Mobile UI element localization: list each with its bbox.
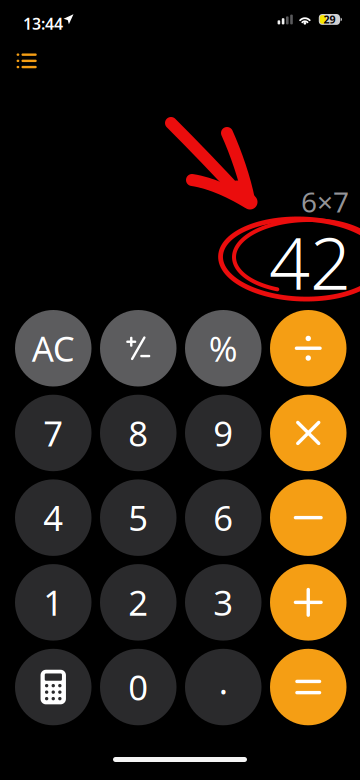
staticText: 8 [128, 410, 148, 456]
staticText: 2 [128, 579, 148, 625]
button[interactable]: 0 [100, 649, 176, 725]
staticText: % [209, 325, 238, 371]
staticText: AC [32, 325, 75, 371]
button[interactable]: 6 [185, 479, 261, 556]
button[interactable]: 8 [100, 395, 176, 471]
staticText: 1 [43, 579, 63, 625]
button[interactable]: Divide [270, 310, 346, 386]
button[interactable]: Equals [270, 649, 346, 725]
button[interactable]: . [185, 649, 261, 725]
button[interactable]: 1 [15, 564, 91, 641]
staticText: 13:44 [23, 13, 63, 34]
button[interactable]: 5 [100, 479, 176, 556]
button[interactable]: 4 [15, 479, 91, 556]
staticText: 29 [323, 12, 335, 27]
button[interactable]: 9 [185, 395, 261, 471]
button[interactable]: 7 [15, 395, 91, 471]
staticText: 3 [213, 579, 233, 625]
button[interactable]: History [3, 43, 51, 79]
button[interactable]: 3 [185, 564, 261, 641]
staticText: 7 [43, 410, 63, 456]
button[interactable]: Minus [270, 479, 346, 556]
button[interactable]: Multiply [270, 395, 346, 471]
staticText: 6 [213, 495, 233, 541]
staticText: 6×7 [301, 183, 349, 220]
button[interactable]: 2 [100, 564, 176, 641]
staticText: 9 [213, 410, 233, 456]
staticText: 5 [128, 495, 148, 541]
staticText: 0 [128, 664, 148, 710]
button[interactable]: % [185, 310, 261, 386]
staticText: 42 [269, 214, 351, 310]
staticText: . [219, 658, 228, 704]
button[interactable]: Plus minus [100, 310, 176, 386]
button[interactable]: Calculator [15, 649, 91, 725]
button[interactable]: Plus [270, 564, 346, 641]
staticText: 4 [43, 495, 63, 541]
button[interactable]: AC [15, 310, 91, 386]
